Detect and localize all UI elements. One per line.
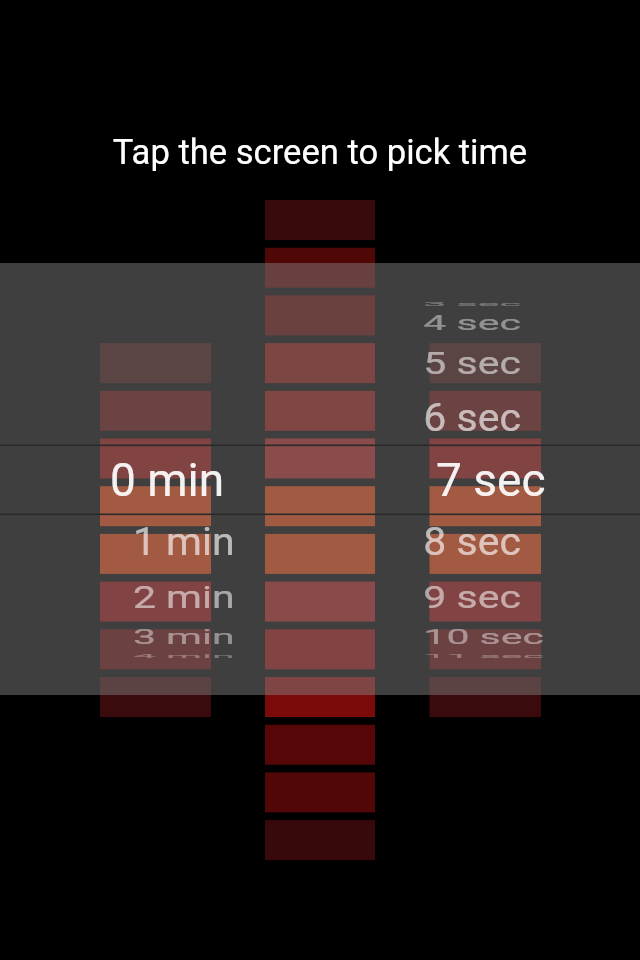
staticText: 2 min: [133, 579, 235, 615]
staticText: Tap the screen to pick time: [0, 132, 640, 173]
staticText: 10 sec: [423, 626, 545, 648]
staticText: 0 min: [110, 453, 225, 507]
button[interactable]: 3 sec: [0, 0, 640, 960]
staticText: 11 sec: [423, 653, 545, 659]
staticText: 4 sec: [423, 312, 521, 334]
staticText: 4 min: [133, 653, 235, 659]
staticText: 3 sec: [423, 301, 521, 307]
staticText: 6 sec: [423, 395, 521, 440]
staticText: 5 sec: [423, 345, 521, 381]
staticText: 9 sec: [423, 579, 521, 615]
staticText: 3 min: [133, 626, 235, 648]
staticText: 8 sec: [423, 519, 521, 564]
staticText: 1 min: [133, 519, 235, 564]
staticText: 7 sec: [436, 453, 546, 507]
